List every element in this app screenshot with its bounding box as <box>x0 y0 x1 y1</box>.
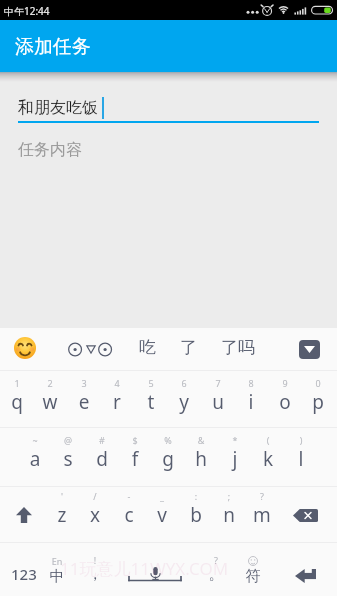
staticText: 5 <box>134 377 168 389</box>
button[interactable]: 7 <box>201 371 235 427</box>
staticText: En <box>40 555 74 567</box>
button[interactable]: 和朋友吃饭 <box>18 98 98 118</box>
button[interactable]: Space <box>111 543 195 596</box>
staticText: 中午12:44 <box>4 4 50 18</box>
staticText: d <box>85 446 119 472</box>
button[interactable]: $ <box>118 428 152 484</box>
button[interactable]: En <box>40 543 74 596</box>
staticText: 11玩意儿11WYX.COM <box>60 557 229 580</box>
button[interactable]: ~ <box>18 428 52 484</box>
button[interactable]: 了 <box>180 337 197 358</box>
staticText: 0 <box>301 377 335 389</box>
button[interactable]: Shift <box>0 487 48 543</box>
button[interactable]: ) <box>284 428 318 484</box>
button[interactable]: ( <box>251 428 285 484</box>
button[interactable]: : <box>179 487 213 543</box>
staticText: 3 <box>67 377 101 389</box>
button[interactable]: ? <box>245 487 279 543</box>
button[interactable]: ! <box>78 543 112 596</box>
staticText: h <box>184 446 218 472</box>
button[interactable]: Backspace <box>280 487 331 543</box>
staticText: 吃 <box>139 337 156 358</box>
staticText: ' <box>45 490 79 502</box>
staticText: c <box>112 502 146 528</box>
staticText: w <box>33 389 67 415</box>
staticText: ( <box>251 434 285 446</box>
staticText: x <box>78 502 112 528</box>
staticText: _ <box>145 490 179 502</box>
staticText: ; <box>212 490 246 502</box>
staticText: 1 <box>0 377 34 389</box>
button[interactable]: _ <box>145 487 179 543</box>
staticText: p <box>301 389 335 415</box>
staticText: a <box>18 446 52 472</box>
staticText: 添加任务 <box>15 35 91 59</box>
button[interactable]: 5 <box>134 371 168 427</box>
button[interactable]: & <box>184 428 218 484</box>
button[interactable]: 任务内容 <box>18 140 82 160</box>
staticText: t <box>134 389 168 415</box>
staticText: i <box>234 389 268 415</box>
staticText: s <box>51 446 85 472</box>
staticText: 9 <box>268 377 302 389</box>
button[interactable]: 了吗 <box>221 337 255 358</box>
button[interactable]: 0 <box>301 371 335 427</box>
staticText: - <box>112 490 146 502</box>
staticText: j <box>218 446 252 472</box>
staticText: n <box>212 502 246 528</box>
staticText: ! <box>78 554 112 566</box>
staticText: 了吗 <box>221 337 255 358</box>
staticText: ， <box>78 565 112 584</box>
staticText: o <box>268 389 302 415</box>
button[interactable]: / <box>78 487 112 543</box>
button[interactable]: 添加任务 <box>0 20 337 72</box>
staticText: r <box>100 389 134 415</box>
button[interactable]: Kaomoji <box>62 335 114 363</box>
staticText: b <box>179 502 213 528</box>
button[interactable]: Enter <box>280 543 337 596</box>
button[interactable]: 9 <box>268 371 302 427</box>
button[interactable]: ; <box>212 487 246 543</box>
button[interactable]: % <box>151 428 185 484</box>
button[interactable]: @ <box>51 428 85 484</box>
button[interactable]: 4 <box>100 371 134 427</box>
button[interactable]: 6 <box>167 371 201 427</box>
staticText: k <box>251 446 285 472</box>
staticText: 4 <box>100 377 134 389</box>
staticText: # <box>85 434 119 446</box>
staticText: ? <box>245 490 279 502</box>
button[interactable]: 123 <box>0 543 46 596</box>
staticText: 2 <box>33 377 67 389</box>
staticText: e <box>67 389 101 415</box>
button[interactable]: 3 <box>67 371 101 427</box>
button[interactable]: # <box>85 428 119 484</box>
staticText: ) <box>284 434 318 446</box>
staticText: & <box>184 434 218 446</box>
staticText: $ <box>118 434 152 446</box>
button[interactable]: - <box>112 487 146 543</box>
button[interactable]: 吃 <box>139 337 156 358</box>
staticText: * <box>218 434 252 446</box>
staticText: @ <box>51 434 85 446</box>
staticText: q <box>0 389 34 415</box>
staticText: m <box>245 502 279 528</box>
staticText: g <box>151 446 185 472</box>
staticText: u <box>201 389 235 415</box>
button[interactable]: 符 <box>236 543 270 596</box>
button[interactable]: 8 <box>234 371 268 427</box>
button[interactable]: ' <box>45 487 79 543</box>
staticText: % <box>151 434 185 446</box>
button[interactable]: ? <box>199 543 233 596</box>
staticText: y <box>167 389 201 415</box>
button[interactable]: More candidates <box>299 340 320 359</box>
staticText: 符 <box>236 567 270 586</box>
staticText: 123 <box>11 564 37 584</box>
button[interactable]: * <box>218 428 252 484</box>
button[interactable]: Emoji <box>14 337 36 359</box>
button[interactable]: 2 <box>33 371 67 427</box>
staticText: v <box>145 502 179 528</box>
staticText: / <box>78 490 112 502</box>
button[interactable]: 1 <box>0 371 34 427</box>
staticText: l <box>284 446 318 472</box>
staticText: ? <box>199 554 233 566</box>
